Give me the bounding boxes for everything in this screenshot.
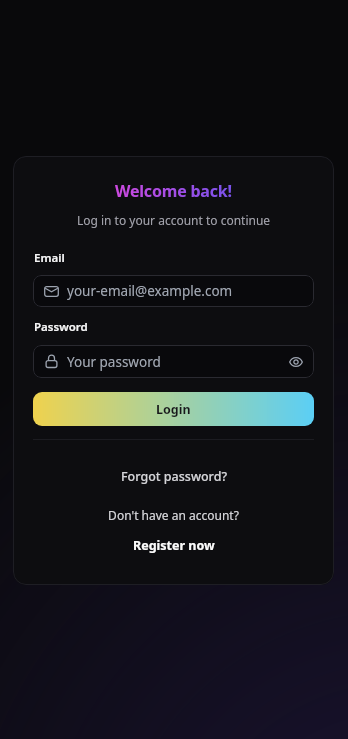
staticText: Register now (133, 537, 215, 554)
staticText: Login (156, 401, 191, 418)
button[interactable]: Your password (33, 345, 314, 378)
staticText: your-email@example.com (67, 282, 233, 300)
staticText: Welcome back! (115, 180, 232, 202)
staticText: Log in to your account to continue (13, 212, 334, 228)
button[interactable]: Forgot password? (13, 468, 334, 485)
staticText: Don't have an account? (13, 507, 334, 523)
staticText: Forgot password? (121, 468, 227, 485)
button[interactable]: your-email@example.com (33, 275, 314, 307)
staticText: Email (34, 250, 65, 266)
staticText: Password (34, 319, 88, 335)
button[interactable]: Register now (13, 537, 334, 554)
button[interactable]: Login (33, 392, 314, 426)
staticText: Your password (67, 353, 161, 371)
